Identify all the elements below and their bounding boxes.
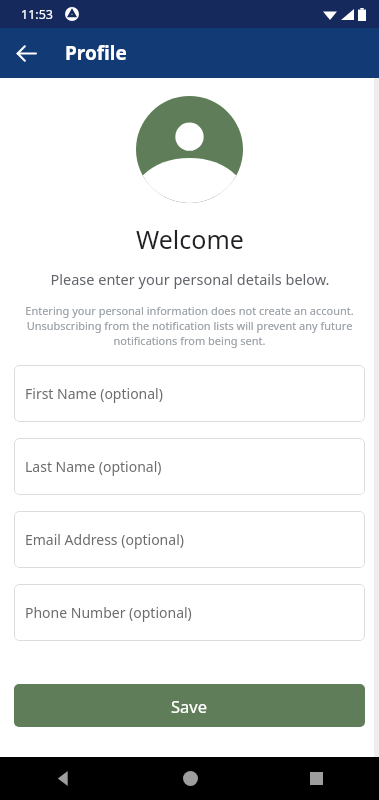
staticText: Save	[171, 695, 208, 717]
button[interactable]: Back	[9, 36, 43, 70]
button[interactable]: First Name (optional)	[14, 365, 365, 422]
button[interactable]: Recent apps	[253, 757, 379, 800]
staticText: Please enter your personal details below…	[50, 269, 330, 289]
staticText: Profile	[65, 40, 127, 66]
button[interactable]: Back	[0, 757, 127, 800]
button[interactable]: Home	[127, 757, 253, 800]
button[interactable]: Phone Number (optional)	[14, 584, 365, 641]
staticText: Entering your personal information does …	[22, 303, 357, 348]
staticText: Phone Number (optional)	[25, 603, 192, 622]
button[interactable]: Email Address (optional)	[14, 511, 365, 568]
staticText: Email Address (optional)	[25, 530, 184, 549]
staticText: Last Name (optional)	[25, 457, 162, 476]
button[interactable]: Last Name (optional)	[14, 438, 365, 495]
button[interactable]: Save	[14, 684, 365, 727]
staticText: First Name (optional)	[25, 384, 163, 403]
staticText: 11:53	[21, 6, 53, 23]
staticText: Welcome	[136, 222, 244, 256]
